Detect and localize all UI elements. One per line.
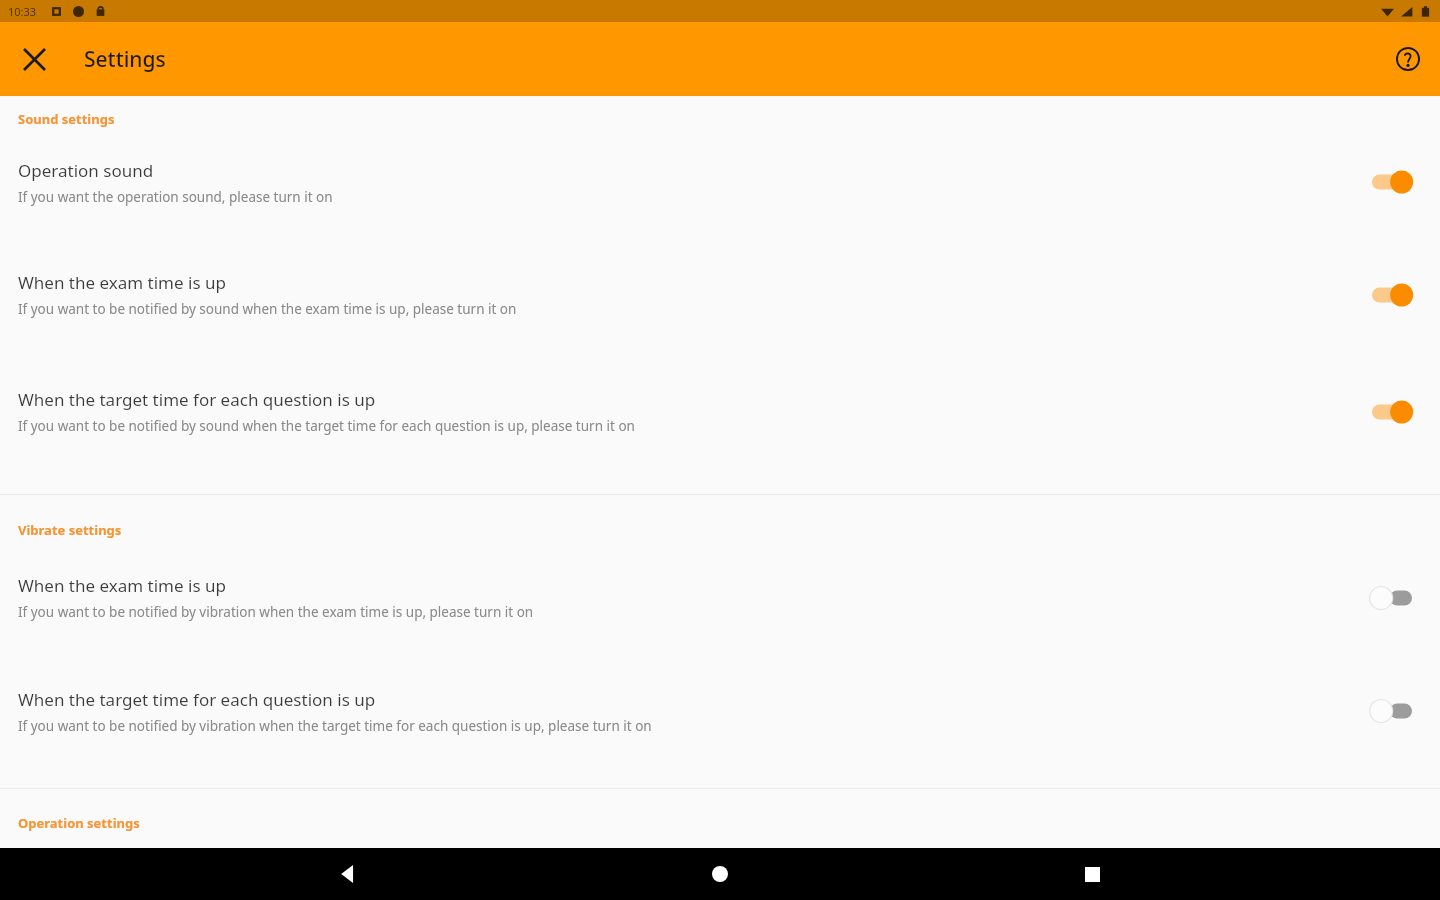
staticText: Operation settings: [18, 814, 140, 832]
staticText: If you want the operation sound, please …: [18, 188, 333, 206]
button[interactable]: Recents: [1068, 850, 1116, 898]
button[interactable]: Close: [12, 37, 56, 81]
staticText: When the exam time is up: [18, 271, 226, 294]
button[interactable]: When the target time for each question i…: [0, 353, 1440, 470]
button[interactable]: On: [1364, 394, 1420, 430]
staticText: 10:33: [8, 4, 37, 19]
staticText: When the target time for each question i…: [18, 688, 376, 711]
button[interactable]: Off: [1364, 693, 1420, 729]
staticText: Settings: [84, 45, 166, 74]
button[interactable]: When the target time for each question i…: [0, 656, 1440, 766]
staticText: If you want to be notified by sound when…: [18, 300, 517, 318]
staticText: Sound settings: [18, 110, 115, 128]
button[interactable]: Operation sound: [0, 128, 1440, 236]
button[interactable]: Back: [324, 850, 372, 898]
button[interactable]: On: [1364, 277, 1420, 313]
staticText: Operation sound: [18, 159, 154, 182]
button[interactable]: When the exam time is up: [0, 539, 1440, 656]
staticText: Vibrate settings: [18, 521, 122, 539]
staticText: If you want to be notified by sound when…: [18, 417, 635, 435]
button[interactable]: Off: [1364, 580, 1420, 616]
button[interactable]: Home: [696, 850, 744, 898]
staticText: If you want to be notified by vibration …: [18, 603, 534, 621]
staticText: When the target time for each question i…: [18, 388, 376, 411]
button[interactable]: On: [1364, 164, 1420, 200]
staticText: If you want to be notified by vibration …: [18, 717, 652, 735]
button[interactable]: Help: [1386, 37, 1430, 81]
button[interactable]: When the exam time is up: [0, 236, 1440, 353]
staticText: When the exam time is up: [18, 574, 226, 597]
